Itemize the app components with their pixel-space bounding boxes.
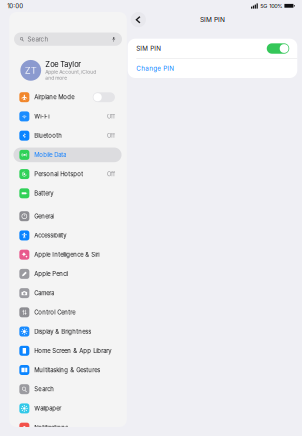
staticText: Wi-Fi	[34, 113, 49, 120]
staticText: Off	[107, 171, 115, 177]
staticText: Multitasking & Gestures	[34, 366, 100, 374]
staticText: Home Screen & App Library	[34, 347, 111, 354]
button[interactable]: Search	[14, 32, 122, 46]
staticText: Apple Account, iCloud	[45, 69, 96, 75]
button[interactable]: SIM PIN	[128, 39, 297, 58]
button[interactable]: Display & Brightness	[9, 322, 127, 341]
staticText: Wallpaper	[34, 405, 61, 412]
staticText: Control Centre	[34, 309, 75, 316]
staticText: Battery	[34, 190, 53, 197]
staticText: Search	[27, 35, 48, 43]
staticText: Change PIN	[136, 65, 174, 72]
button[interactable]: General	[9, 207, 127, 226]
staticText: Notifications	[34, 424, 68, 431]
button[interactable]: ZT	[9, 53, 127, 88]
staticText: SIM PIN	[200, 16, 225, 24]
button[interactable]: Accessibility	[9, 226, 127, 245]
staticText: Display & Brightness	[34, 328, 91, 335]
button[interactable]: Personal Hotspot	[9, 164, 127, 184]
staticText: Off	[107, 113, 115, 120]
button[interactable]: Airplane Mode	[9, 88, 127, 107]
button[interactable]: Wallpaper	[9, 399, 127, 418]
staticText: Apple Intelligence & Siri	[34, 251, 99, 258]
staticText: Mobile Data	[34, 151, 66, 158]
staticText: 100%	[269, 3, 282, 9]
staticText: Airplane Mode	[34, 94, 74, 101]
button[interactable]: Change PIN	[128, 58, 297, 78]
button[interactable]: Camera	[9, 283, 127, 303]
staticText: ZT	[25, 65, 37, 76]
button[interactable]: Notifications	[9, 418, 127, 436]
staticText: Camera	[34, 289, 54, 297]
button[interactable]: Multitasking & Gestures	[9, 360, 127, 380]
button[interactable]: Apple Intelligence & Siri	[9, 245, 127, 264]
button[interactable]: Wi-Fi	[9, 107, 127, 126]
staticText: Apple Pencil	[34, 270, 68, 277]
staticText: and more	[45, 75, 67, 81]
staticText: General	[34, 213, 54, 220]
button[interactable]: Bluetooth	[9, 126, 127, 145]
button[interactable]: Home Screen & App Library	[9, 341, 127, 360]
staticText: 5G	[260, 3, 267, 9]
button[interactable]: Battery	[9, 184, 127, 203]
staticText: Personal Hotspot	[34, 170, 83, 178]
button[interactable]: Apple Pencil	[9, 264, 127, 283]
button[interactable]: Search	[9, 380, 127, 399]
staticText: Off	[107, 132, 115, 139]
staticText: Search	[34, 386, 54, 393]
staticText: 10:00	[7, 2, 23, 10]
button[interactable]: Control Centre	[9, 303, 127, 322]
button[interactable]: Mobile Data	[9, 145, 127, 164]
staticText: SIM PIN	[136, 45, 161, 52]
button[interactable]: Back	[131, 12, 146, 27]
staticText: Accessibility	[34, 232, 66, 239]
staticText: Zoe Taylor	[45, 60, 81, 69]
staticText: Bluetooth	[34, 132, 62, 139]
